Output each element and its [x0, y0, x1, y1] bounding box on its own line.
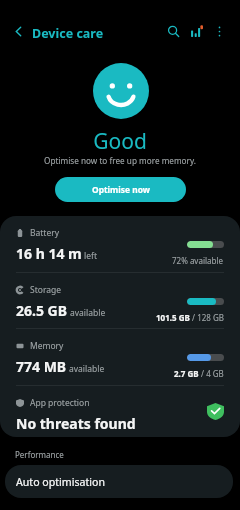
button[interactable]: Memory	[0, 329, 240, 385]
staticText: 26.5 GB	[16, 301, 68, 320]
button[interactable]: App protection	[0, 386, 240, 437]
staticText: No threats found	[16, 414, 136, 433]
staticText: Storage	[30, 284, 62, 296]
staticText: Performance	[15, 449, 64, 460]
staticText: Optimise now to free up more memory.	[44, 155, 196, 166]
button[interactable]: Optimise now	[55, 177, 186, 202]
staticText: / 128 GB	[190, 312, 224, 323]
staticText: Device care	[32, 25, 104, 42]
staticText: App protection	[30, 397, 90, 409]
staticText: 16 h 14 m	[16, 244, 82, 263]
staticText: available	[70, 307, 106, 319]
button[interactable]: Battery	[0, 216, 240, 272]
staticText: Optimise now	[92, 184, 150, 195]
button[interactable]: Auto optimisation	[5, 465, 233, 498]
staticText: Battery	[30, 227, 60, 239]
staticText: available	[69, 363, 105, 375]
staticText: 2.7 GB	[174, 368, 199, 379]
staticText: Good	[93, 127, 147, 156]
staticText: left	[84, 250, 97, 262]
button[interactable]: Storage	[0, 273, 240, 328]
staticText: Auto optimisation	[16, 475, 105, 489]
staticText: Memory	[30, 340, 64, 352]
button[interactable]: Search	[162, 20, 184, 42]
staticText: 774 MB	[16, 357, 67, 376]
staticText: 101.5 GB	[156, 312, 190, 323]
staticText: / 4 GB	[199, 368, 224, 379]
button[interactable]: More options	[208, 20, 230, 42]
button[interactable]: Back	[7, 20, 29, 42]
staticText: 72% available	[172, 255, 224, 266]
button[interactable]: Usage statistics	[185, 20, 207, 42]
